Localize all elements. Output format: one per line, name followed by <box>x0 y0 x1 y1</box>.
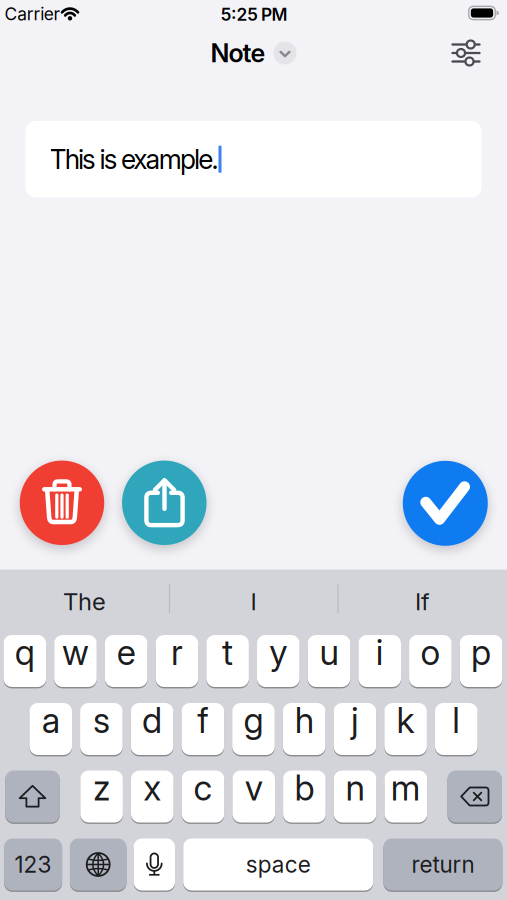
staticText: m <box>391 768 421 808</box>
staticText: p <box>471 632 491 673</box>
staticText: u <box>319 632 338 673</box>
button[interactable]: o <box>409 634 452 688</box>
staticText: space <box>246 851 311 878</box>
staticText: e <box>117 632 136 673</box>
staticText: w <box>62 632 89 673</box>
staticText: s <box>93 700 110 741</box>
staticText: I <box>250 587 256 616</box>
button[interactable]: b <box>283 770 326 823</box>
button[interactable]: e <box>105 634 147 688</box>
staticText: Note <box>210 38 265 68</box>
button[interactable]: l <box>435 702 478 756</box>
button[interactable]: If <box>342 579 502 625</box>
button[interactable]: Done <box>403 461 488 546</box>
staticText: v <box>245 768 263 808</box>
button[interactable]: Shift <box>5 770 60 823</box>
staticText: y <box>269 632 287 673</box>
staticText: i <box>376 632 384 673</box>
button[interactable]: f <box>181 702 224 756</box>
button[interactable]: Dictate <box>134 838 175 891</box>
staticText: a <box>42 700 60 741</box>
button[interactable]: Share <box>122 461 207 545</box>
button[interactable]: q <box>3 634 46 688</box>
button[interactable]: y <box>257 634 300 688</box>
staticText: c <box>193 768 212 808</box>
staticText: l <box>452 700 460 741</box>
button[interactable]: i <box>358 634 401 688</box>
button[interactable]: n <box>334 770 376 823</box>
staticText: z <box>93 768 110 808</box>
staticText: x <box>143 768 161 808</box>
staticText: 5:25 PM <box>220 4 287 25</box>
button[interactable]: w <box>54 634 97 688</box>
staticText: return <box>411 851 474 878</box>
button[interactable]: m <box>384 770 427 823</box>
button[interactable]: p <box>460 634 502 688</box>
button[interactable]: g <box>232 702 275 756</box>
button[interactable]: Delete <box>20 461 104 545</box>
button[interactable]: x <box>131 770 174 823</box>
button[interactable]: Settings <box>444 33 488 73</box>
staticText: This is example. <box>49 143 218 175</box>
staticText: d <box>142 700 162 741</box>
button[interactable]: s <box>80 702 123 756</box>
staticText: o <box>420 632 440 673</box>
button[interactable]: Next keyboard <box>70 838 126 891</box>
staticText: h <box>295 700 314 741</box>
staticText: j <box>351 700 359 741</box>
staticText: 123 <box>15 851 52 878</box>
staticText: g <box>243 700 263 741</box>
staticText: f <box>197 700 208 741</box>
staticText: r <box>171 632 183 673</box>
button[interactable]: space <box>183 838 373 891</box>
staticText: The <box>63 587 106 616</box>
staticText: k <box>397 700 415 741</box>
button[interactable]: h <box>283 702 325 756</box>
button[interactable]: k <box>384 702 427 756</box>
button[interactable]: v <box>232 770 275 823</box>
button[interactable]: Note menu <box>210 38 296 68</box>
button[interactable]: Delete <box>447 770 502 823</box>
button[interactable]: d <box>131 702 173 756</box>
button[interactable]: z <box>80 770 123 823</box>
button[interactable]: The <box>4 579 164 625</box>
staticText: If <box>415 587 430 616</box>
button[interactable]: u <box>308 634 350 688</box>
button[interactable]: This is example. <box>25 121 481 197</box>
button[interactable]: a <box>29 702 72 756</box>
button[interactable]: t <box>206 634 249 688</box>
staticText: q <box>15 632 35 673</box>
button[interactable]: j <box>334 702 376 756</box>
staticText: b <box>294 768 314 808</box>
button[interactable]: return <box>383 838 502 891</box>
staticText: Carrier <box>4 4 60 24</box>
button[interactable]: c <box>182 770 224 823</box>
button[interactable]: 123 <box>4 838 62 891</box>
staticText: t <box>222 632 233 673</box>
button[interactable]: r <box>156 634 198 688</box>
button[interactable]: I <box>173 579 333 625</box>
staticText: n <box>346 768 365 808</box>
